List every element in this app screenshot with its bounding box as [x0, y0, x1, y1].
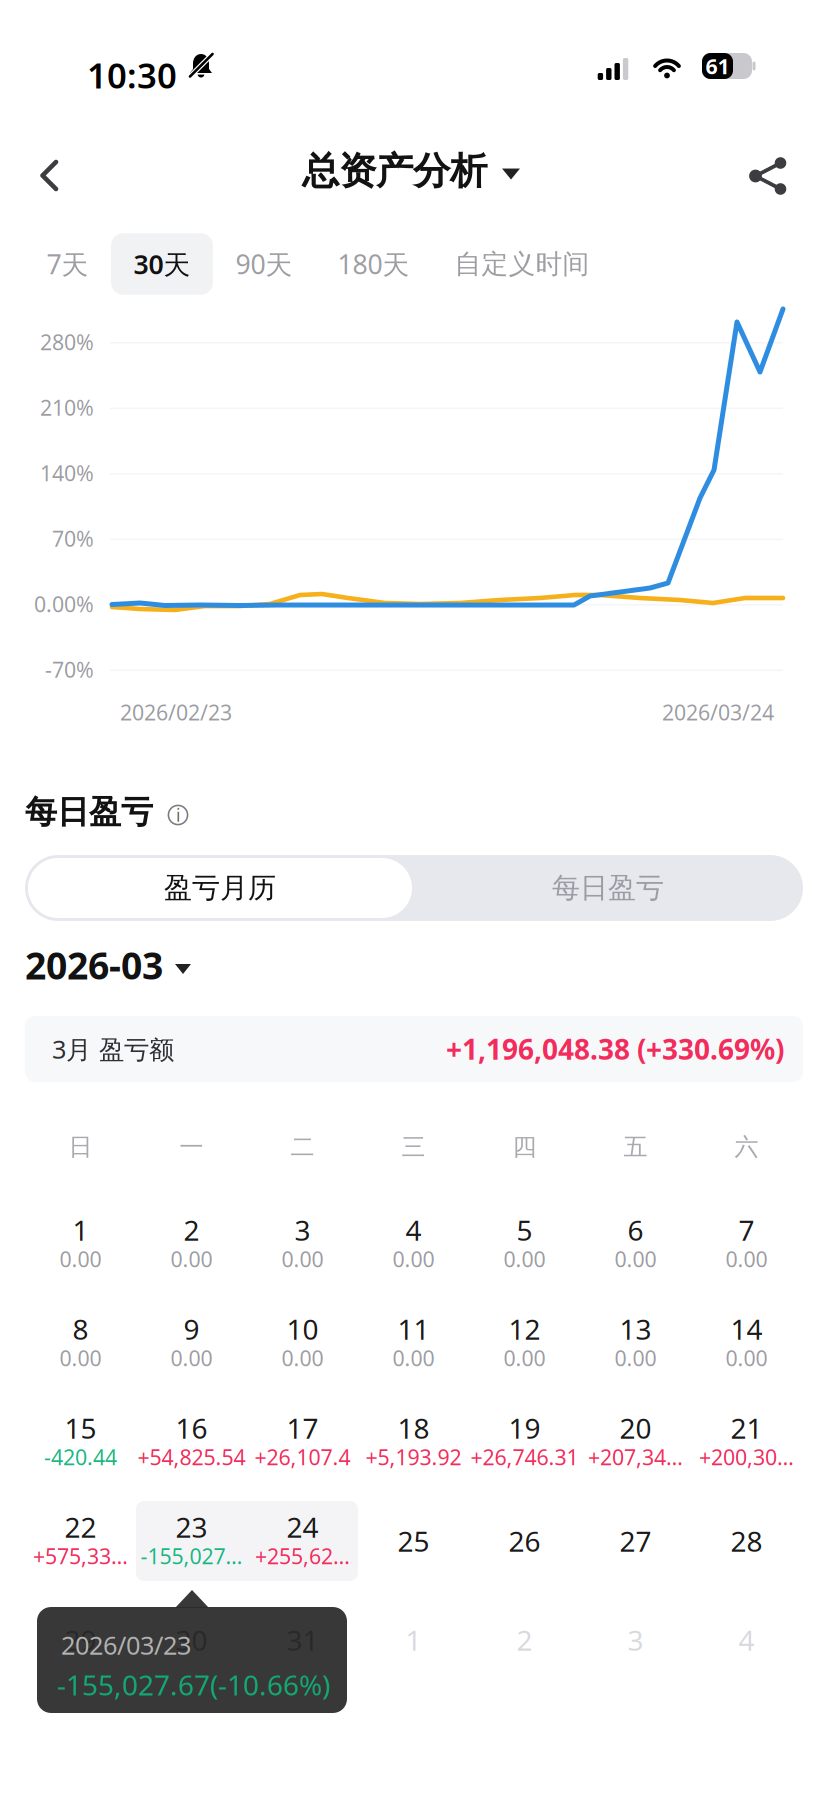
staticText: 23 [175, 1508, 207, 1546]
staticText: 90天 [235, 246, 292, 282]
staticText: -155,027… [140, 1542, 242, 1570]
staticText: 0.00 [170, 1245, 212, 1273]
button[interactable]: 返回 [0, 96, 100, 212]
staticText: 22 [64, 1508, 96, 1546]
staticText: 30天 [133, 246, 190, 282]
staticText: 8 [72, 1310, 88, 1348]
staticText: 29 [64, 1621, 96, 1659]
staticText: 1 [72, 1211, 88, 1249]
staticText: 一 [179, 1132, 203, 1162]
button[interactable]: 180天 [315, 233, 432, 295]
staticText: +26,107.4 [254, 1443, 350, 1471]
staticText: 17 [286, 1409, 318, 1447]
staticText: 25 [397, 1522, 429, 1560]
staticText: 盈亏月历 [164, 871, 276, 905]
staticText: 三 [401, 1132, 425, 1162]
staticText: 0.00 [59, 1344, 101, 1372]
staticText: 28 [730, 1522, 762, 1560]
staticText: 61 [705, 52, 729, 80]
staticText: 2026/03/24 [662, 698, 774, 726]
staticText: -155,027.67(-10.66%) [57, 1666, 330, 1703]
staticText: 0.00 [725, 1245, 767, 1273]
staticText: 24 [286, 1508, 318, 1546]
staticText: +1,196,048.38 (+330.69%) [446, 1030, 784, 1068]
staticText: 1 [405, 1621, 421, 1659]
staticText: 五 [623, 1132, 647, 1162]
staticText: 0.00 [281, 1245, 323, 1273]
staticText: 280% [40, 328, 94, 356]
staticText: -70% [45, 655, 94, 684]
staticText: 0.00 [503, 1245, 545, 1273]
staticText: 2026-03 [25, 940, 163, 990]
staticText: i [176, 803, 180, 826]
staticText: 27 [619, 1522, 651, 1560]
staticText: 0.00 [725, 1344, 767, 1372]
staticText: 3 [627, 1621, 643, 1659]
staticText: 13 [619, 1310, 651, 1348]
staticText: +207,34… [588, 1443, 683, 1471]
staticText: 二 [290, 1132, 314, 1162]
button[interactable]: 每日盈亏 [416, 855, 800, 921]
staticText: 每日盈亏 [25, 792, 153, 832]
button[interactable]: 分享 [728, 96, 828, 212]
staticText: 180天 [337, 246, 409, 282]
staticText: 0.00 [281, 1344, 323, 1372]
staticText: 20 [619, 1409, 651, 1447]
button[interactable]: 自定义时间 [432, 235, 612, 293]
staticText: 16 [175, 1409, 207, 1447]
staticText: 19 [508, 1409, 540, 1447]
staticText: 4 [738, 1621, 754, 1659]
staticText: 0.00 [503, 1344, 545, 1372]
button[interactable]: 30天 [111, 233, 213, 295]
staticText: 四 [512, 1132, 536, 1162]
staticText: 6 [627, 1211, 643, 1249]
staticText: 2026/02/23 [120, 698, 232, 726]
staticText: 0.00 [392, 1245, 434, 1273]
staticText: 10:30 [87, 52, 177, 98]
staticText: +5,193.92 [365, 1443, 461, 1471]
staticText: +200,30… [699, 1443, 794, 1471]
staticText: 2 [183, 1211, 199, 1249]
staticText: 70% [52, 524, 94, 553]
staticText: 0.00 [392, 1344, 434, 1372]
staticText: 0.00 [59, 1245, 101, 1273]
staticText: +575,33… [33, 1542, 128, 1570]
staticText: 10 [286, 1310, 318, 1348]
staticText: 0.00 [170, 1344, 212, 1372]
button[interactable]: 盈亏月历 [28, 858, 412, 918]
staticText: +54,825.54 [137, 1443, 245, 1471]
staticText: 14 [730, 1310, 762, 1348]
staticText: 每日盈亏 [552, 871, 664, 905]
button[interactable]: 2026-03 [25, 940, 191, 990]
staticText: 210% [40, 393, 94, 422]
staticText: 15 [64, 1409, 96, 1447]
staticText: 140% [40, 459, 94, 487]
staticText: 9 [183, 1310, 199, 1348]
staticText: 4 [405, 1211, 421, 1249]
staticText: 30 [175, 1621, 207, 1659]
staticText: 18 [397, 1409, 429, 1447]
staticText: 日 [68, 1132, 92, 1162]
staticText: 总资产分析 [302, 148, 487, 194]
staticText: 0.00 [614, 1344, 656, 1372]
staticText: 31 [286, 1621, 318, 1659]
staticText: 3月 盈亏额 [52, 1032, 174, 1066]
staticText: 11 [397, 1310, 429, 1348]
staticText: 3 [294, 1211, 310, 1249]
staticText: 0.00 [614, 1245, 656, 1273]
button[interactable]: 90天 [213, 233, 315, 295]
staticText: 21 [730, 1409, 762, 1447]
button[interactable]: 7天 [24, 233, 111, 295]
staticText: 7天 [46, 246, 88, 282]
staticText: 7 [738, 1211, 754, 1249]
staticText: 0.00% [34, 590, 94, 618]
staticText: 26 [508, 1522, 540, 1560]
staticText: +255,62… [255, 1542, 350, 1570]
staticText: 自定义时间 [454, 248, 589, 280]
staticText: +26,746.31 [470, 1443, 578, 1471]
staticText: 六 [734, 1132, 758, 1162]
button[interactable]: 总资产分析 [281, 113, 541, 229]
staticText: 5 [516, 1211, 532, 1249]
staticText: 2026/03/23 [61, 1628, 191, 1662]
staticText: -420.44 [44, 1443, 117, 1471]
